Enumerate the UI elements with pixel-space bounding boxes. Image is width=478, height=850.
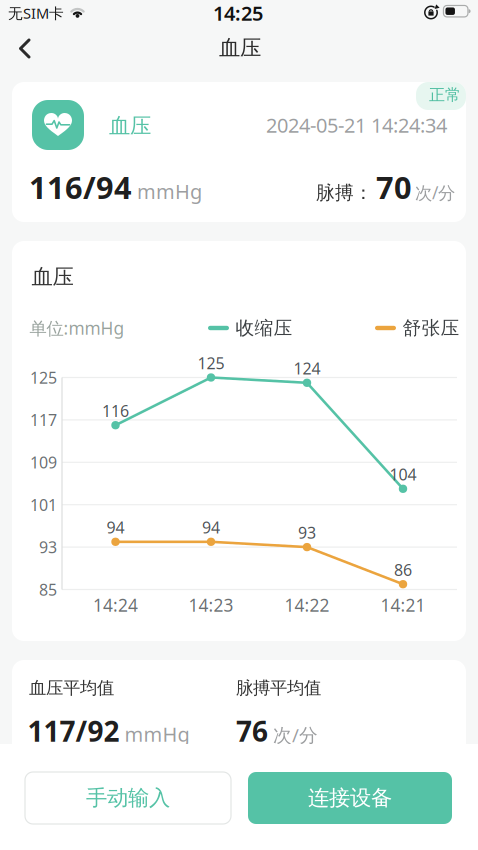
button[interactable]: 手动输入	[25, 772, 231, 824]
staticText: 109	[30, 452, 57, 473]
staticText: 14:25	[213, 0, 263, 26]
staticText: 125	[197, 352, 224, 374]
staticText: 血压	[31, 264, 73, 290]
staticText: 116	[102, 400, 129, 421]
staticText: 脉搏：	[316, 181, 373, 204]
staticText: 93	[39, 536, 57, 558]
staticText: 70	[376, 167, 412, 207]
staticText: 94	[202, 517, 220, 538]
staticText: 血压	[219, 35, 261, 61]
staticText: 2024-05-21 14:24:34	[266, 112, 447, 138]
staticText: 脉搏平均值	[236, 677, 321, 699]
staticText: 93	[298, 522, 316, 543]
staticText: 次/分	[415, 181, 455, 204]
staticText: mmHg	[137, 178, 202, 204]
staticText: 14:21	[380, 593, 425, 616]
staticText: 14:24	[93, 593, 138, 616]
staticText: 14:23	[188, 593, 233, 616]
staticText: 血压	[109, 113, 151, 139]
staticText: 连接设备	[308, 785, 392, 811]
staticText: 85	[39, 579, 57, 600]
staticText: 117	[30, 409, 57, 430]
staticText: 收缩压	[235, 316, 292, 339]
staticText: 94	[106, 517, 124, 538]
staticText: 14:22	[284, 593, 329, 616]
staticText: 正常	[429, 85, 461, 105]
staticText: 单位:mmHg	[29, 316, 124, 339]
staticText: 血压平均值	[29, 677, 114, 699]
staticText: 次/分	[273, 722, 318, 747]
staticText: 117/92	[27, 712, 119, 750]
staticText: 手动输入	[86, 785, 170, 811]
staticText: 125	[30, 367, 57, 388]
staticText: 116/94	[29, 167, 132, 207]
staticText: 101	[30, 494, 57, 515]
staticText: 124	[293, 358, 320, 379]
staticText: mmHg	[124, 721, 189, 747]
button[interactable]: 连接设备	[248, 772, 452, 824]
staticText: 104	[389, 464, 416, 485]
staticText: 无SIM卡	[8, 3, 64, 23]
staticText: 76	[236, 712, 268, 750]
staticText: 86	[394, 559, 412, 580]
staticText: 舒张压	[402, 316, 459, 339]
button[interactable]: Back	[2, 26, 46, 70]
